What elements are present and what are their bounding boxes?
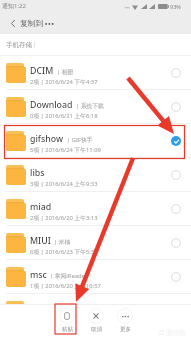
staticText: libs — [30, 167, 45, 179]
staticText: 手机存储 — [6, 41, 32, 49]
button[interactable]: 更多 — [115, 308, 135, 333]
button[interactable]: gifshow — [0, 124, 191, 158]
staticText: 5项 | 2016/6/24 下午11:09 — [30, 146, 101, 154]
staticText: msc — [30, 269, 47, 281]
staticText: 复制到 — [20, 18, 44, 28]
staticText: | 米柚 — [54, 238, 71, 246]
button[interactable]: Download — [0, 90, 191, 124]
button[interactable]: netlibs — [0, 294, 191, 328]
staticText: MIUI — [30, 235, 51, 247]
button[interactable]: DCIM — [0, 56, 191, 90]
staticText: 粘贴 — [62, 326, 73, 333]
staticText: | GIF快手 — [67, 136, 93, 144]
button[interactable]: Back — [0, 12, 20, 34]
button[interactable]: libs — [0, 158, 191, 192]
staticText: 通知1:22 — [2, 2, 26, 10]
button[interactable]: 取消 — [86, 308, 106, 333]
staticText: | 掌阅iReader — [50, 272, 88, 280]
staticText: 百度经验 — [158, 328, 186, 337]
staticText: 2项 | 2016/6/24 下午4:37 — [30, 78, 98, 86]
staticText: | 系统下载 — [76, 102, 104, 110]
staticText: netlibs — [30, 303, 59, 315]
staticText: 更多 — [120, 326, 131, 333]
staticText: 3项 | 2016/6/24 上午9:33 — [30, 180, 98, 188]
staticText: 1项 | 2016/6/20 上午10:57 — [30, 282, 101, 290]
button[interactable]: 粘贴 — [57, 308, 77, 333]
staticText: 2项 | 2016/6/20 上午3:13 — [30, 214, 98, 222]
staticText: | 相册 — [57, 68, 74, 76]
staticText: | MTK系统 — [62, 306, 91, 314]
button[interactable]: 手机存储 — [6, 41, 39, 49]
staticText: DCIM — [30, 65, 54, 77]
staticText: 93% — [170, 3, 181, 10]
staticText: 6项 | 2016/6/23 下午5:34 — [30, 248, 98, 256]
staticText: 取消 — [91, 326, 102, 333]
staticText: 〉 — [33, 41, 39, 49]
staticText: 1项 | 2016/6/20 上午10:57 — [30, 316, 101, 324]
staticText: Download — [30, 99, 73, 111]
staticText: 0项 | 2016/6/21 上午6:18 — [30, 112, 98, 120]
staticText: miad — [30, 201, 52, 213]
button[interactable]: MIUI — [0, 226, 191, 260]
button[interactable]: miad — [0, 192, 191, 226]
staticText: gifshow — [30, 133, 64, 145]
button[interactable]: msc — [0, 260, 191, 294]
